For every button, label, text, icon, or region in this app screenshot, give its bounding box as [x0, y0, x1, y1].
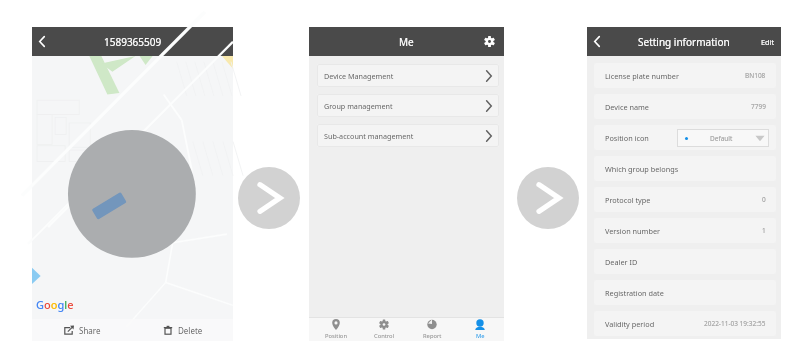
staticText: Position icon [605, 133, 649, 143]
staticText: Google [36, 297, 74, 312]
staticText: Dealer ID [605, 257, 638, 267]
staticText: Share [79, 325, 101, 336]
button[interactable]: Sub-account management [317, 124, 499, 147]
staticText: 1 [762, 226, 766, 235]
button[interactable]: Me [456, 318, 504, 341]
button[interactable]: Registration date [594, 280, 776, 305]
button[interactable]: Position icon [594, 125, 776, 150]
staticText: Report [423, 332, 442, 340]
staticText: Version number [605, 226, 661, 236]
staticText: 1589365509 [104, 35, 162, 49]
staticText: Me [399, 35, 414, 49]
button[interactable]: Share [32, 319, 132, 341]
button[interactable]: Device Management [317, 64, 499, 87]
button[interactable]: Edit [753, 27, 781, 56]
staticText: Sub-account management [324, 131, 414, 141]
button[interactable]: Report [408, 318, 456, 341]
button[interactable]: Group management [317, 94, 499, 117]
button[interactable]: Dealer ID [594, 249, 776, 274]
staticText: Protocol type [605, 195, 651, 205]
button[interactable]: Next step [517, 167, 579, 229]
staticText: License plate number [605, 71, 679, 81]
staticText: 7799 [751, 102, 766, 111]
staticText: Device Management [324, 71, 394, 81]
staticText: 0 [762, 195, 766, 204]
staticText: BN108 [745, 71, 766, 80]
button[interactable]: Device name [594, 94, 776, 119]
button[interactable]: Delete [132, 319, 233, 341]
staticText: Default [710, 134, 733, 143]
staticText: 2022-11-03 19:32:55 [704, 319, 766, 328]
button[interactable]: License plate number [594, 63, 776, 88]
staticText: Which group belongs [605, 164, 679, 174]
button[interactable]: Position [312, 318, 360, 341]
staticText: Delete [178, 325, 203, 336]
button[interactable]: Validity period [594, 311, 776, 336]
staticText: Control [374, 332, 395, 340]
button[interactable]: Back [587, 27, 607, 56]
staticText: Position [325, 332, 347, 340]
staticText: Registration date [605, 288, 664, 298]
staticText: Setting information [638, 35, 730, 49]
button[interactable]: Version number [594, 218, 776, 243]
button[interactable]: Which group belongs [594, 156, 776, 181]
staticText: Validity period [605, 319, 655, 329]
staticText: Device name [605, 102, 649, 112]
button[interactable]: Back [32, 27, 52, 56]
button[interactable]: Protocol type [594, 187, 776, 212]
button[interactable]: Control [360, 318, 408, 341]
button[interactable]: Settings [474, 27, 504, 56]
staticText: Group management [324, 101, 393, 111]
button[interactable]: Next step [238, 167, 300, 229]
staticText: Edit [761, 37, 775, 47]
staticText: Me [476, 332, 485, 340]
